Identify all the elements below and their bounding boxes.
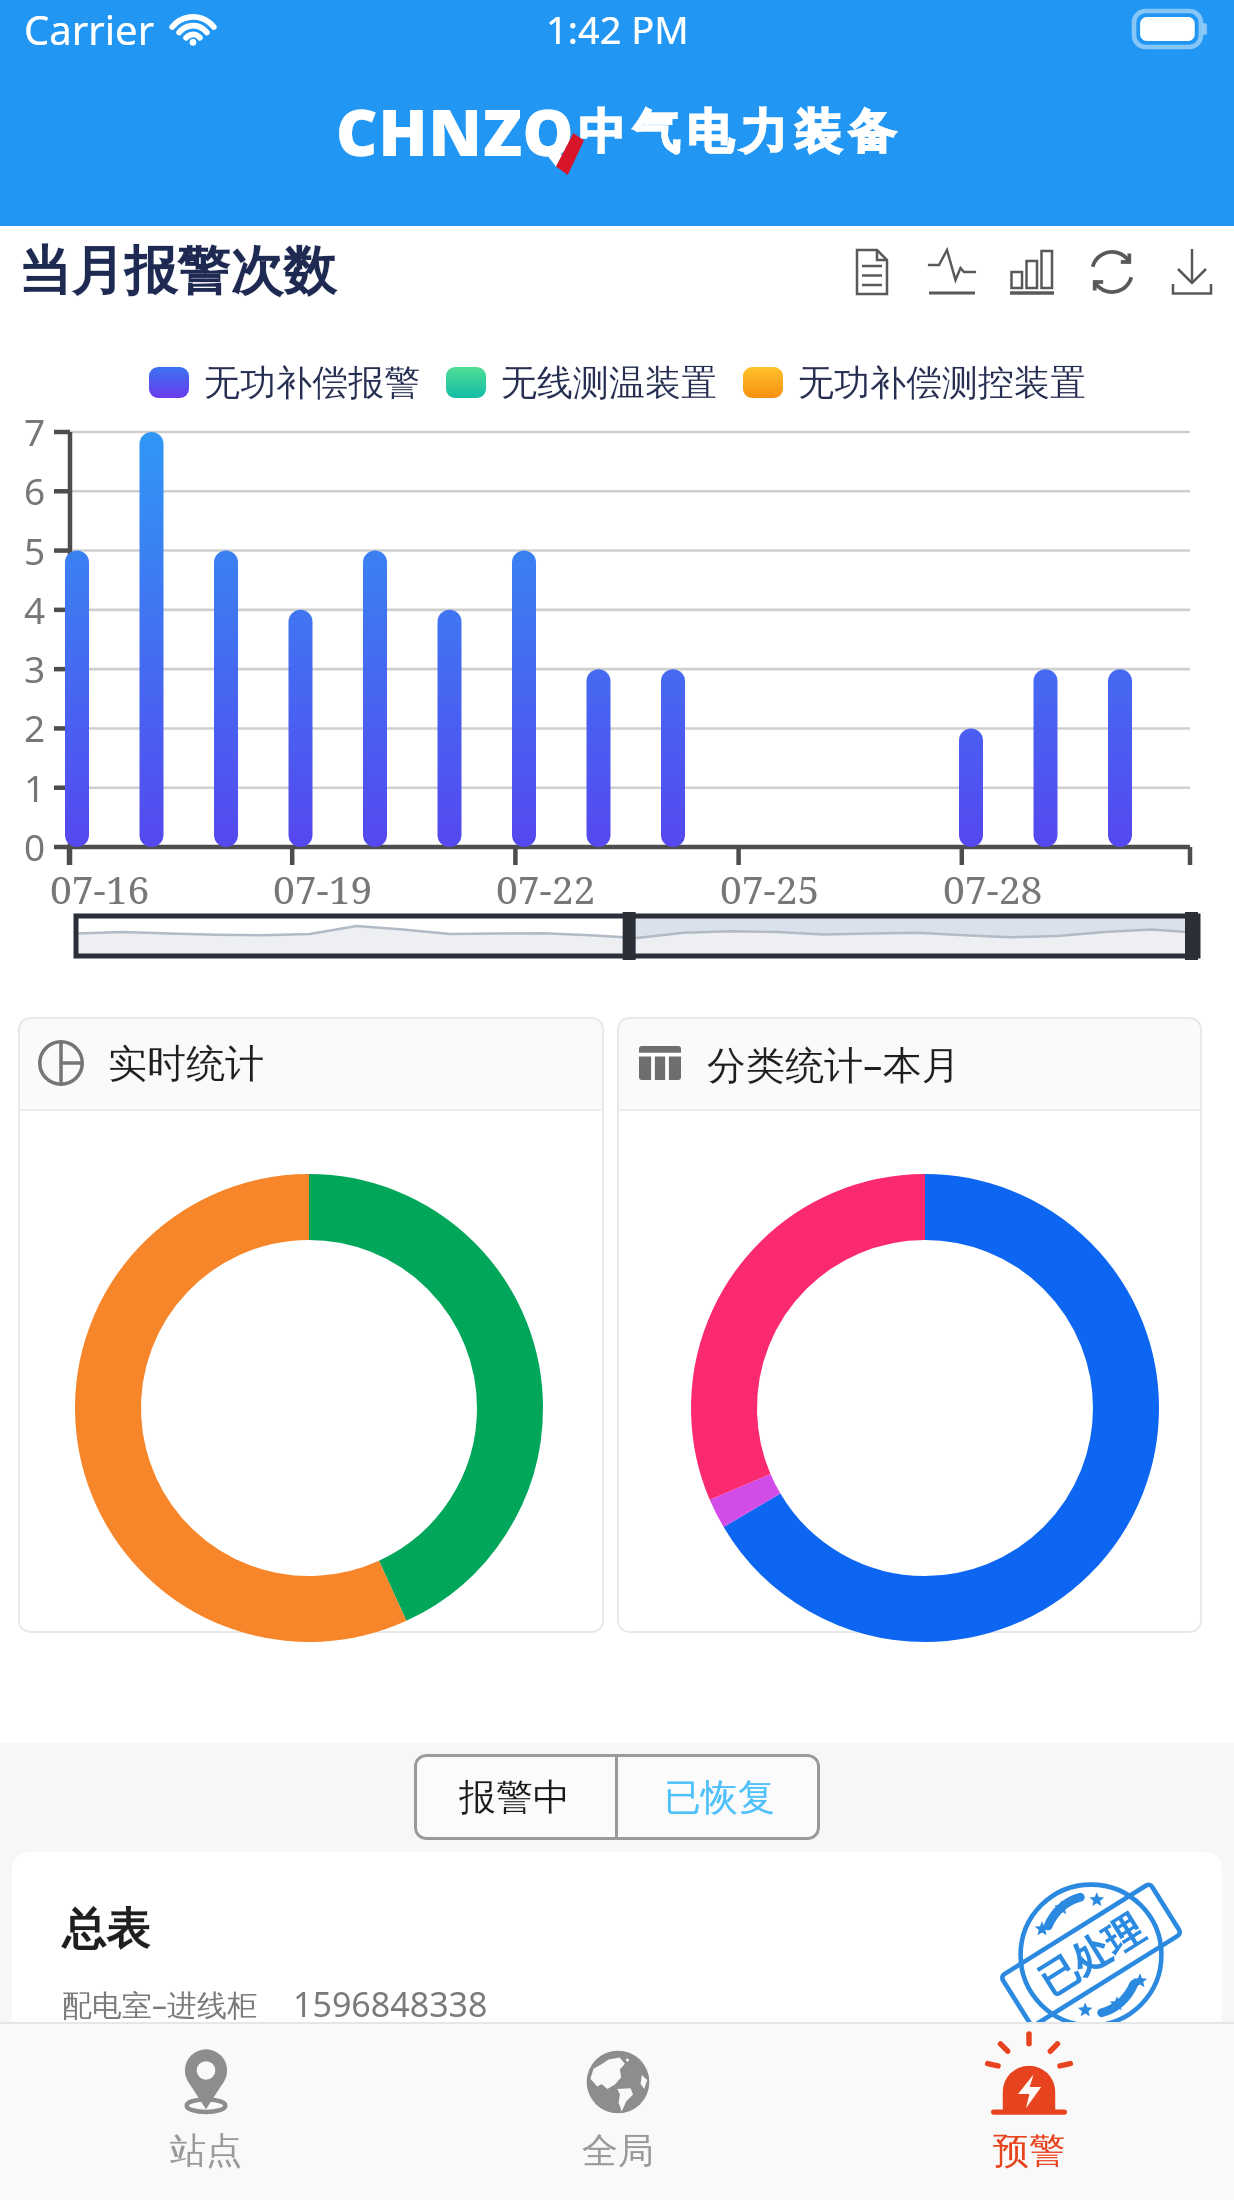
staticText: 无线测温装置 bbox=[501, 360, 717, 405]
staticText: 当月报警次数 bbox=[18, 238, 336, 305]
button[interactable]: Document bbox=[832, 232, 912, 312]
staticText: 7 bbox=[24, 406, 46, 456]
button[interactable]: Trend bbox=[912, 232, 992, 312]
button[interactable]: 全局 bbox=[412, 2024, 823, 2200]
staticText: 3 bbox=[24, 643, 46, 693]
button[interactable]: 实时统计 bbox=[18, 1017, 604, 1633]
staticText: 1 bbox=[24, 762, 46, 812]
staticText: 2 bbox=[24, 702, 46, 752]
staticText: Carrier bbox=[24, 2, 155, 56]
button[interactable]: 站点 bbox=[0, 2024, 412, 2200]
staticText: 6 bbox=[24, 465, 46, 515]
button[interactable]: 总表 bbox=[12, 1852, 1222, 2032]
button[interactable]: 报警中 bbox=[414, 1754, 615, 1840]
staticText: 分类统计–本月 bbox=[707, 1037, 961, 1090]
staticText: 07-25 bbox=[720, 862, 820, 915]
staticText: 总表 bbox=[62, 1902, 150, 1957]
staticText: 已恢复 bbox=[664, 1774, 775, 1821]
staticText: 07-19 bbox=[273, 862, 373, 915]
button[interactable]: 已恢复 bbox=[618, 1754, 820, 1840]
staticText: 07-16 bbox=[50, 862, 150, 915]
staticText: 已处理 bbox=[1030, 1904, 1152, 2005]
staticText: CHNZQ bbox=[336, 88, 575, 175]
staticText: 5 bbox=[24, 525, 46, 575]
staticText: 中气电力装备 bbox=[575, 103, 899, 162]
staticText: 实时统计 bbox=[108, 1039, 264, 1088]
staticText: 配电室–进线柜 bbox=[62, 1984, 257, 2025]
staticText: 1596848338 bbox=[293, 1981, 488, 2027]
staticText: 07-28 bbox=[943, 862, 1043, 915]
staticText: 预警 bbox=[993, 2128, 1065, 2173]
staticText: 报警中 bbox=[459, 1774, 570, 1821]
staticText: 4 bbox=[24, 584, 46, 634]
button[interactable]: 预警 bbox=[823, 2024, 1234, 2200]
staticText: 1:42 PM bbox=[546, 3, 689, 55]
button[interactable]: 分类统计–本月 bbox=[617, 1017, 1202, 1633]
staticText: 无功补偿测控装置 bbox=[798, 360, 1086, 405]
staticText: 站点 bbox=[170, 2128, 242, 2173]
staticText: 无功补偿报警 bbox=[204, 360, 420, 405]
staticText: 全局 bbox=[582, 2128, 654, 2173]
staticText: 07-22 bbox=[496, 862, 596, 915]
staticText: 0 bbox=[24, 821, 46, 871]
button[interactable]: Bar chart bbox=[992, 232, 1072, 312]
button[interactable]: Download bbox=[1152, 232, 1232, 312]
button[interactable]: Refresh bbox=[1072, 232, 1152, 312]
button[interactable]: Chart range slider bbox=[76, 916, 1198, 956]
